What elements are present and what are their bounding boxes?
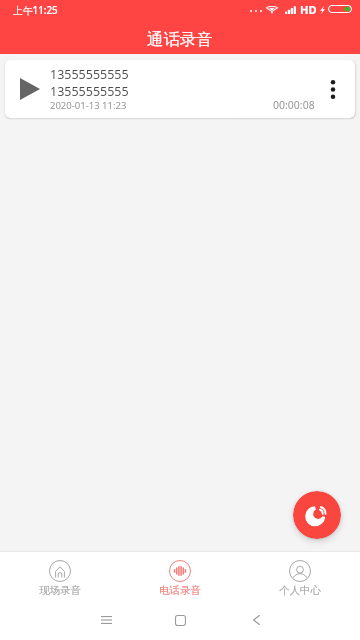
staticText: 上午11:25 — [13, 4, 58, 17]
button[interactable]: 电话录音 — [120, 552, 240, 600]
staticText: 13555555555 — [50, 83, 129, 100]
button[interactable]: 13555555555 — [5, 60, 355, 118]
staticText: 电话录音 — [159, 584, 201, 597]
staticText: 通话录音 — [147, 29, 213, 50]
button[interactable]: 个人中心 — [240, 552, 360, 600]
button[interactable]: Start call recording — [293, 491, 341, 539]
staticText: 13555555555 — [50, 66, 129, 83]
button[interactable]: More options — [311, 60, 355, 118]
staticText: 2020-01-13 11:23 — [50, 99, 127, 112]
button[interactable]: Menu — [82, 604, 130, 636]
button[interactable]: Back — [232, 604, 280, 636]
staticText: 现场录音 — [39, 584, 81, 597]
staticText: 个人中心 — [279, 584, 321, 597]
staticText: HD — [300, 2, 317, 17]
staticText: 00:00:08 — [273, 98, 315, 112]
button[interactable]: Home — [156, 604, 204, 636]
button[interactable]: 现场录音 — [0, 552, 120, 600]
